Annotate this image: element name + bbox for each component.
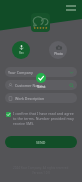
button[interactable]: Customer Name [5, 80, 77, 90]
staticText: Sent [37, 84, 46, 89]
staticText: Rec [19, 51, 24, 55]
button[interactable]: Work Description [5, 93, 77, 103]
staticText: Work Description [15, 96, 45, 101]
staticText: Your Company [8, 70, 33, 75]
button[interactable]: Your Company [5, 67, 77, 77]
button[interactable]: Account [66, 5, 76, 11]
button[interactable]: Attach photo [49, 41, 67, 59]
button[interactable]: Record audio [12, 41, 30, 59]
staticText: SEND [36, 140, 46, 145]
staticText: I confirm that I have read and agree to … [13, 111, 74, 126]
button[interactable]: I confirm that I have read and agree to … [6, 111, 74, 126]
button[interactable]: SEND [5, 136, 77, 148]
staticText: Photo [54, 52, 63, 56]
staticText: Customer Name [15, 83, 43, 88]
